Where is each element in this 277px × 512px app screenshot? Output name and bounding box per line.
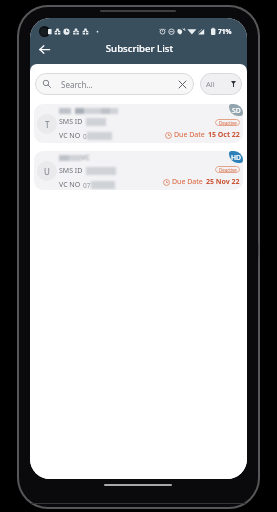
staticText: Due Date [174, 130, 205, 140]
staticText: 15 Oct 22 [208, 130, 240, 140]
staticText: VC NO [59, 131, 81, 141]
button[interactable]: All [200, 73, 242, 95]
staticText: HD [231, 153, 242, 162]
button[interactable]: Clear search [177, 79, 187, 89]
staticText: VC [81, 153, 90, 163]
staticText: 25 Nov 22 [206, 177, 240, 187]
staticText: Deactive [219, 120, 237, 126]
staticText: 07 [83, 181, 91, 190]
button[interactable]: SD [34, 104, 243, 143]
staticText: U [44, 166, 50, 177]
staticText: Due Date [172, 177, 203, 187]
staticText: SMS ID [59, 166, 83, 176]
staticText: SMS ID [59, 117, 83, 127]
button[interactable]: HD [34, 151, 243, 190]
staticText: All [206, 79, 215, 89]
staticText: Search... [61, 79, 93, 90]
staticText: Deactive [219, 167, 237, 173]
staticText: T [45, 119, 50, 130]
staticText: 71% [218, 27, 232, 36]
button[interactable]: Search... [35, 73, 194, 95]
staticText: 0 [83, 132, 87, 141]
staticText: VC NO [59, 180, 81, 190]
staticText: SD [232, 106, 241, 115]
button[interactable]: Back [34, 39, 54, 59]
staticText: Subscriber List [31, 42, 247, 55]
